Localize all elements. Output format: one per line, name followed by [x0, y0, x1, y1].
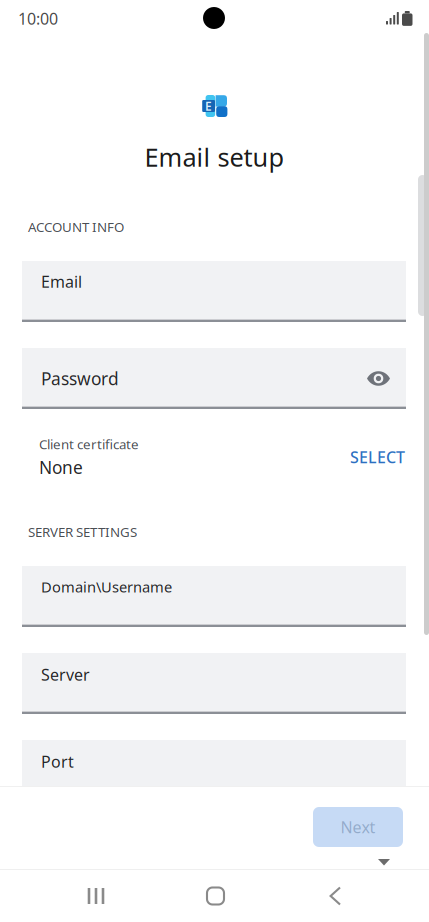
button[interactable]: Show password — [0, 0, 429, 922]
button[interactable]: Recent apps — [0, 870, 429, 922]
staticText: 10:00 — [18, 8, 58, 29]
staticText: ACCOUNT INFO — [28, 218, 124, 236]
staticText: Server — [41, 664, 90, 685]
staticText: Password — [41, 367, 119, 390]
button[interactable]: Client certificate — [22, 425, 406, 489]
staticText: Domain\Username — [41, 577, 172, 596]
staticText: Email setup — [144, 140, 284, 174]
staticText: Next — [340, 816, 375, 838]
staticText: E — [205, 98, 212, 114]
staticText: Client certificate — [39, 435, 139, 453]
staticText: Email — [41, 271, 82, 292]
staticText: Port — [41, 751, 74, 772]
button[interactable]: Next — [0, 0, 429, 922]
button[interactable]: Back — [0, 870, 429, 922]
staticText: None — [39, 456, 83, 479]
staticText: SELECT — [350, 446, 405, 468]
staticText: SERVER SETTINGS — [28, 523, 137, 541]
button[interactable]: Hide keyboard — [0, 0, 429, 922]
button[interactable]: Home — [0, 870, 429, 922]
